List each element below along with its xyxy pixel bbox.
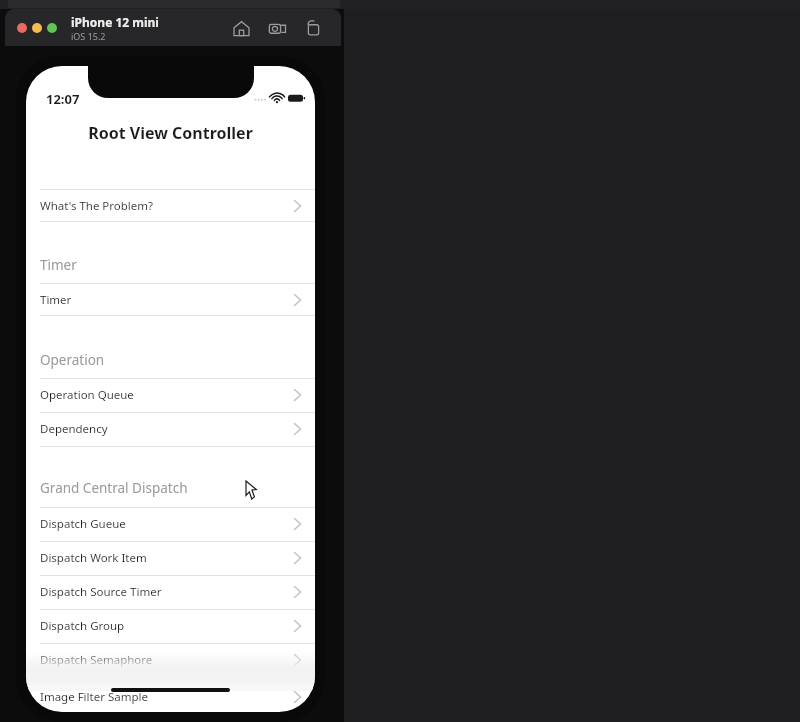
staticText: iOS 15.2 [71, 30, 106, 42]
button[interactable]: Dispatch Semaphore [26, 643, 315, 677]
button[interactable]: Rotate [301, 16, 325, 40]
staticText: Grand Central Dispatch [40, 479, 188, 497]
button[interactable]: What's The Problem? [26, 189, 315, 223]
button[interactable]: Operation Queue [26, 378, 315, 412]
staticText: iPhone 12 mini [71, 14, 159, 30]
staticText: Dispatch Gueue [40, 516, 126, 532]
button[interactable]: Image Filter Sample [26, 680, 315, 712]
staticText: What's The Problem? [40, 198, 154, 214]
button[interactable]: Zoom [47, 23, 57, 33]
button[interactable]: Close [17, 23, 27, 33]
button[interactable]: Timer [26, 283, 315, 317]
button[interactable]: Dispatch Source Timer [26, 575, 315, 609]
staticText: Dependency [40, 421, 108, 437]
staticText: 12:07 [46, 90, 80, 108]
button[interactable]: Dependency [26, 412, 315, 446]
button[interactable]: Dispatch Gueue [26, 507, 315, 541]
button[interactable]: Dispatch Group [26, 609, 315, 643]
staticText: Timer [40, 256, 77, 274]
button[interactable]: Dispatch Work Item [26, 541, 315, 575]
staticText: Operation Queue [40, 387, 134, 403]
staticText: Image Filter Sample [40, 689, 148, 705]
button[interactable]: Minimize [32, 23, 42, 33]
staticText: Dispatch Semaphore [40, 652, 153, 668]
staticText: Operation [40, 351, 105, 369]
button[interactable]: Home [229, 16, 253, 40]
button[interactable]: Screenshot [265, 16, 289, 40]
staticText: Dispatch Source Timer [40, 584, 162, 600]
staticText: Dispatch Group [40, 618, 125, 634]
staticText: Dispatch Work Item [40, 550, 147, 566]
staticText: Root View Controller [26, 122, 315, 144]
staticText: Timer [40, 292, 72, 308]
